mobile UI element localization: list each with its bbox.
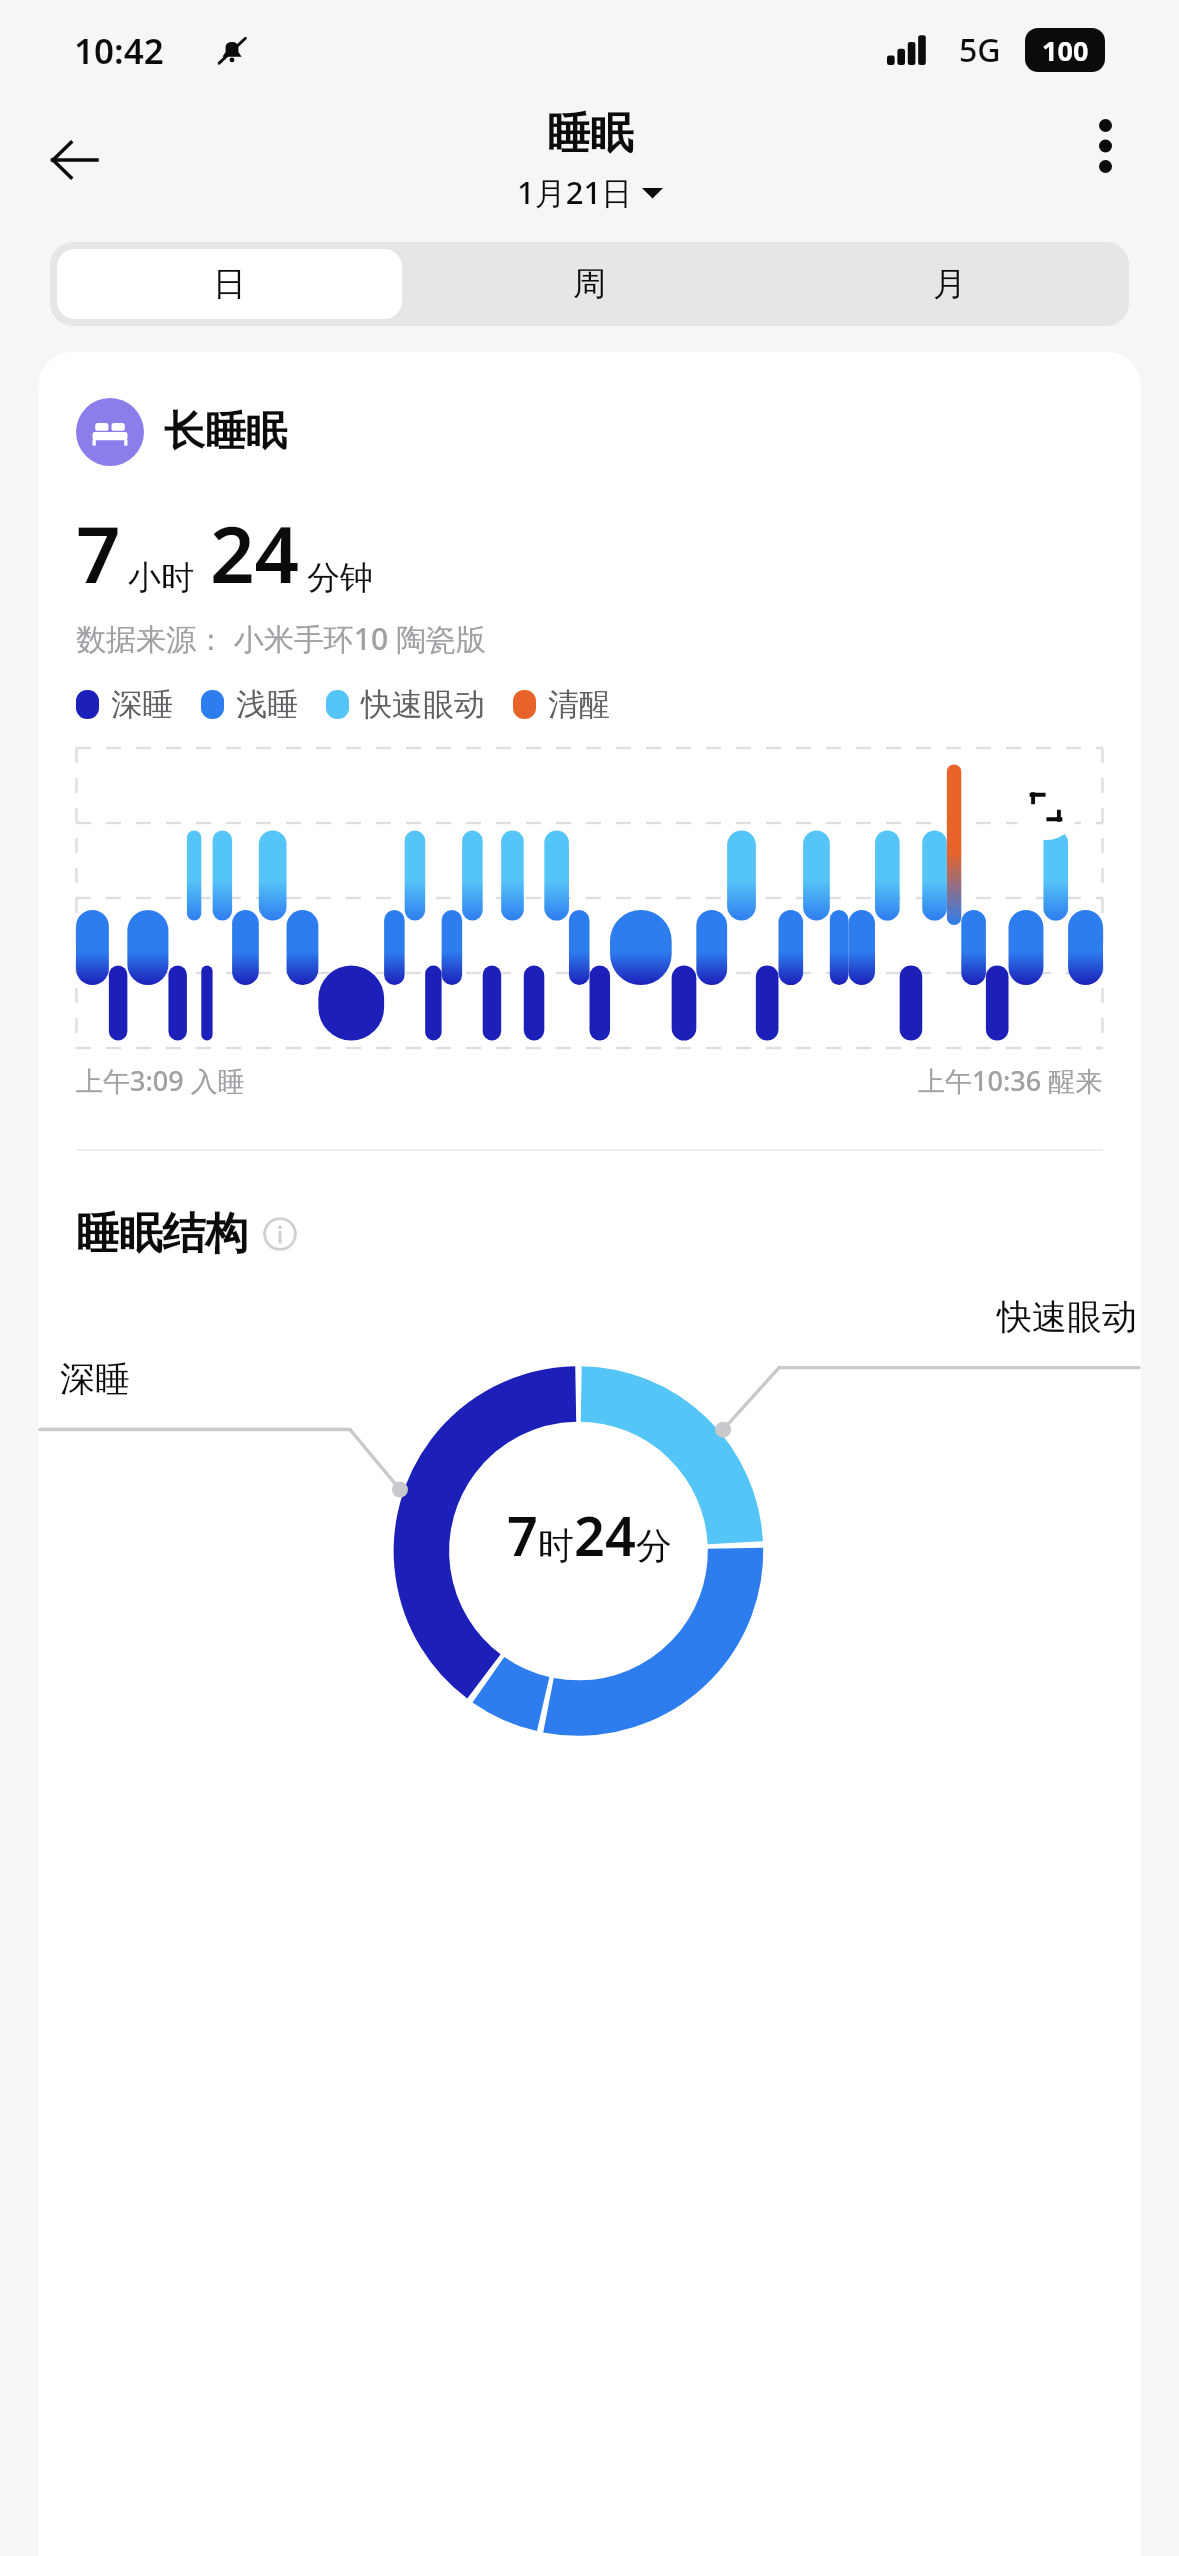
staticText: 分 — [636, 1523, 672, 1568]
staticText: 月 — [933, 263, 966, 305]
button[interactable]: 长睡眠 — [76, 398, 287, 466]
staticText: 上午3:09 入睡 — [76, 1062, 245, 1099]
staticText: 深睡 — [60, 1357, 130, 1401]
staticText: 日 — [213, 263, 246, 305]
staticText: 数据来源： 小米手环10 陶瓷版 — [76, 618, 486, 659]
staticText: 时 — [538, 1523, 574, 1568]
staticText: 快速眼动 — [997, 1295, 1137, 1339]
staticText: 7 — [507, 1498, 538, 1572]
button[interactable]: 月 — [776, 249, 1122, 319]
staticText: 长睡眠 — [164, 406, 287, 458]
staticText: 清醒 — [548, 685, 610, 724]
staticText: 24 — [210, 500, 300, 606]
button[interactable]: 日 — [57, 249, 402, 319]
staticText: 7 — [76, 500, 121, 606]
staticText: 上午10:36 醒来 — [918, 1062, 1103, 1099]
button[interactable]: Expand chart — [1013, 774, 1079, 840]
staticText: 分钟 — [307, 557, 373, 599]
staticText: 100 — [1042, 32, 1089, 69]
staticText: 周 — [573, 263, 606, 305]
button[interactable]: 1月21日 — [517, 171, 663, 213]
staticText: 睡眠 — [547, 107, 633, 161]
staticText: 快速眼动 — [361, 685, 485, 724]
staticText: 浅睡 — [236, 685, 298, 724]
staticText: 24 — [574, 1498, 636, 1572]
staticText: 睡眠结构 — [76, 1207, 248, 1261]
staticText: 1月21日 — [517, 171, 633, 213]
button[interactable]: Back — [36, 122, 112, 198]
button[interactable]: 周 — [416, 249, 762, 319]
staticText: 5G — [959, 28, 1001, 72]
button[interactable]: Info — [262, 1216, 298, 1252]
staticText: 10:42 — [74, 27, 164, 75]
staticText: 小时 — [128, 557, 194, 599]
button[interactable]: More options — [1067, 108, 1143, 184]
staticText: 深睡 — [111, 685, 173, 724]
